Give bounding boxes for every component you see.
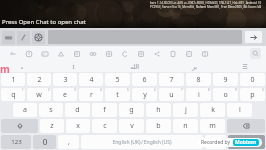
button[interactable]: 0 [240,88,265,101]
button[interactable]: ⌄ [0,61,43,72]
button[interactable]: k [200,103,225,117]
staticText: 8 [208,88,210,92]
button[interactable]: Enter [228,135,265,149]
button[interactable]: 2 [27,88,51,101]
button[interactable]: I [43,61,104,72]
button[interactable]: Emoji keyboard [33,135,56,149]
button[interactable]: g [119,103,144,117]
button[interactable]: 7 [159,88,184,101]
button[interactable]: l [227,103,252,117]
button[interactable]: 5 [105,88,130,101]
button[interactable]: 8 [186,88,211,101]
button[interactable]: d [65,103,90,117]
button[interactable]: Settings [104,49,114,59]
button[interactable]: m [200,119,225,133]
button[interactable]: Search [250,48,261,59]
button[interactable]: Undo [120,49,130,59]
button[interactable]: GIF [56,49,66,59]
button[interactable]: c [92,119,117,133]
button[interactable]: . [205,135,226,149]
button[interactable]: Stickers [88,49,98,59]
staticText: o [223,90,228,100]
staticText: a [23,105,27,115]
button[interactable]: Emoji [24,49,34,59]
button[interactable]: Voice input [17,31,30,44]
staticText: 4 [89,75,94,85]
button[interactable]: 2 [27,73,51,86]
button[interactable]: a [13,103,37,117]
button[interactable]: Send message [245,31,262,43]
button[interactable]: 1 [1,88,25,101]
button[interactable]: English (UK) ⁄ English (US) [81,135,203,149]
staticText: 1 [22,88,24,92]
button[interactable]: Shift [1,119,38,133]
button[interactable]: الله [104,61,164,72]
staticText: q [11,90,16,100]
staticText: Press Open Chat to open chat [2,18,86,26]
staticText: , [68,137,70,147]
staticText: الله [130,63,139,70]
button[interactable]: Back [8,49,18,59]
button[interactable]: 6 [132,88,157,101]
staticText: 8 [196,75,201,85]
button[interactable]: 4 [79,73,103,86]
staticText: k [211,105,215,115]
button[interactable]: Share [152,49,162,59]
staticText: b [156,121,161,131]
button[interactable]: Clipboard [168,49,178,59]
button[interactable]: z [40,119,64,133]
button[interactable]: 0 [240,73,265,86]
button[interactable]: 1 [1,73,25,86]
staticText: Mobizen [235,139,257,146]
staticText: 3 [74,88,76,92]
button[interactable]: Notes [184,49,194,59]
staticText: 4 [100,88,102,92]
button[interactable]: s [39,103,63,117]
button[interactable]: 9 [213,73,238,86]
staticText: 7 [181,88,183,92]
staticText: m [209,121,216,131]
button[interactable]: ☰ [224,61,266,72]
button[interactable]: بر [164,61,224,72]
button[interactable]: Translate [72,49,82,59]
button[interactable]: 9 [213,88,238,101]
staticText: n [183,121,188,131]
button[interactable]: 8 [186,73,211,86]
button[interactable]: h [146,103,171,117]
staticText: e [63,90,67,100]
staticText: ☰ [242,63,248,70]
button[interactable]: Text editing [136,49,146,59]
button[interactable]: 4 [79,88,103,101]
button[interactable]: More apps [200,49,210,59]
button[interactable]: Keyboard [2,31,15,44]
button[interactable]: f [92,103,117,117]
button[interactable]: v [119,119,144,133]
button[interactable]: 123 [1,135,31,149]
staticText: 6 [154,88,156,92]
staticText: P72953, Server:Tex:16, Mem36t, Nohant Me… [150,5,262,9]
button[interactable]: Backspace [227,119,265,133]
button[interactable]: 3 [53,88,77,101]
button[interactable]: 3 [53,73,77,86]
button[interactable]: 5 [105,73,130,86]
button[interactable]: j [173,103,198,117]
button[interactable]: b [146,119,171,133]
staticText: 0 [262,88,264,92]
staticText: 0 [250,75,255,85]
staticText: p [250,90,255,100]
staticText: s [49,105,53,115]
button[interactable]: Images [40,49,50,59]
staticText: 3 [63,75,68,85]
staticText: 5 [115,75,120,85]
button[interactable]: 6 [132,73,157,86]
button[interactable]: , [58,135,79,149]
button[interactable]: Emoticons [32,31,45,44]
staticText: j [185,105,187,115]
button[interactable]: 7 [159,73,184,86]
button[interactable]: n [173,119,198,133]
button[interactable]: x [66,119,90,133]
staticText: Recorded by [201,139,231,146]
staticText: 9 [223,75,228,85]
staticText: I [72,63,75,71]
